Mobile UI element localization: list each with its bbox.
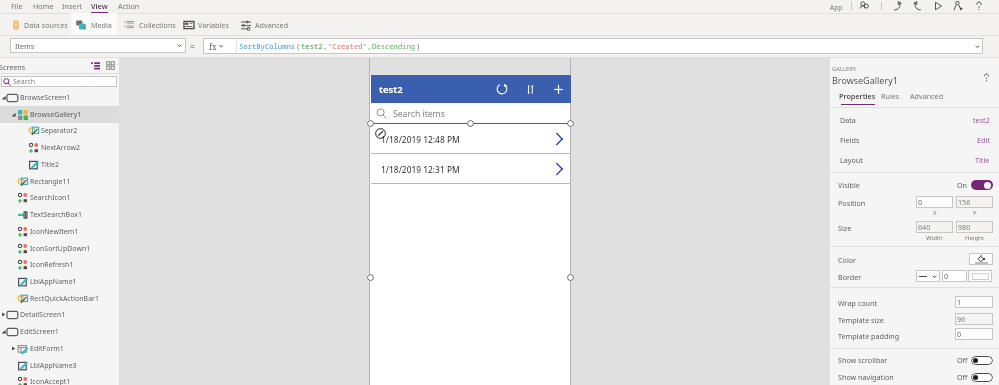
button[interactable]: IconSortUpDown1: [0, 240, 119, 257]
staticText: Fields: [840, 135, 860, 145]
button[interactable]: New item: [547, 75, 569, 103]
button[interactable]: Items: [10, 38, 186, 53]
button[interactable]: SearchIcon1: [0, 189, 119, 206]
button[interactable]: 0: [955, 328, 993, 340]
button[interactable]: RectQuickActionBar1: [0, 290, 119, 307]
staticText: 96: [957, 314, 966, 324]
button[interactable]: Insert: [58, 0, 86, 13]
button[interactable]: Properties: [837, 88, 878, 105]
button[interactable]: Search items: [371, 103, 571, 124]
staticText: Rules: [881, 91, 900, 101]
staticText: IconSortUpDown1: [30, 244, 91, 254]
button[interactable]: Border style: [916, 270, 940, 282]
button[interactable]: Rectangle11: [0, 173, 119, 190]
button[interactable]: BrowseGallery1: [0, 106, 119, 123]
staticText: test2: [379, 83, 403, 96]
button[interactable]: NextArrow2: [0, 139, 119, 156]
staticText: NextArrow2: [41, 143, 81, 153]
button[interactable]: Tree view: [91, 61, 100, 70]
button[interactable]: Rules: [879, 88, 902, 101]
button[interactable]: TextSearchBox1: [0, 206, 119, 223]
button[interactable]: LblAppName1: [0, 273, 119, 290]
button[interactable]: File: [7, 0, 27, 13]
button[interactable]: Media: [70, 14, 118, 35]
staticText: Insert: [62, 1, 82, 11]
button[interactable]: 640: [916, 221, 953, 233]
button[interactable]: Undo: [891, 0, 903, 12]
button[interactable]: Data sources: [5, 14, 74, 35]
button[interactable]: IconRefresh1: [0, 256, 119, 273]
staticText: fx: [209, 41, 217, 52]
staticText: 0: [944, 271, 949, 281]
button[interactable]: Preview: [932, 0, 944, 12]
button[interactable]: EditScreen1: [0, 323, 119, 340]
staticText: Advanced: [910, 91, 944, 101]
staticText: LblAppName1: [30, 277, 77, 287]
button[interactable]: BrowseScreen1: [0, 89, 119, 106]
staticText: Action: [118, 1, 140, 11]
staticText: Show navigation: [838, 372, 894, 382]
staticText: EditScreen1: [20, 327, 59, 337]
button[interactable]: Function: [203, 38, 236, 54]
button[interactable]: 96: [955, 313, 993, 325]
staticText: BrowseScreen1: [20, 93, 71, 103]
staticText: Home: [33, 1, 54, 11]
button[interactable]: 156: [956, 196, 993, 208]
button[interactable]: Help: [973, 0, 985, 12]
button[interactable]: Fields: [830, 130, 999, 149]
button[interactable]: DetailScreen1: [0, 306, 119, 323]
staticText: 980: [958, 222, 971, 232]
button[interactable]: Share: [952, 0, 964, 12]
button[interactable]: Search: [1, 76, 117, 87]
staticText: Layout: [840, 155, 863, 165]
button[interactable]: IconAccept1: [0, 373, 119, 385]
button[interactable]: Variables: [178, 14, 235, 35]
button[interactable]: Visible: [830, 178, 999, 192]
staticText: Screens: [0, 62, 26, 72]
staticText: Collections: [139, 20, 176, 30]
staticText: Wrap count: [838, 298, 878, 308]
staticText: RectQuickActionBar1: [30, 294, 99, 304]
staticText: Title: [975, 155, 990, 165]
staticText: (: [296, 41, 301, 51]
button[interactable]: 0: [942, 270, 967, 282]
button[interactable]: App: [830, 3, 843, 12]
staticText: test2: [301, 41, 323, 51]
button[interactable]: Redo: [912, 0, 924, 12]
button[interactable]: Collections: [118, 14, 182, 35]
staticText: Off: [957, 372, 968, 382]
button[interactable]: 1/18/2019 12:31 PM: [371, 154, 571, 184]
button[interactable]: Layout: [830, 150, 999, 169]
button[interactable]: 1: [955, 296, 993, 308]
button[interactable]: IconNewItem1: [0, 223, 119, 240]
staticText: TextSearchBox1: [30, 210, 82, 220]
button[interactable]: 980: [956, 221, 993, 233]
button[interactable]: Help: [982, 73, 991, 82]
button[interactable]: 1/18/2019 12:48 PM: [371, 124, 571, 154]
button[interactable]: Refresh: [491, 75, 513, 103]
button[interactable]: Advanced: [235, 14, 295, 35]
button[interactable]: Data: [830, 110, 999, 129]
button[interactable]: Account: [858, 0, 870, 12]
staticText: LblAppName3: [30, 361, 77, 371]
staticText: Items: [15, 41, 35, 51]
button[interactable]: LblAppName3: [0, 357, 119, 374]
button[interactable]: Action: [114, 0, 144, 13]
button[interactable]: Separator2: [0, 122, 119, 139]
staticText: Separator2: [41, 126, 78, 136]
staticText: 1/18/2019 12:48 PM: [381, 134, 460, 145]
button[interactable]: Border colour: [968, 270, 992, 282]
button[interactable]: EditForm1: [0, 340, 119, 357]
button[interactable]: Sort: [519, 75, 541, 103]
button[interactable]: 0: [916, 196, 953, 208]
button[interactable]: Thumbnail view: [106, 61, 115, 70]
button[interactable]: Show navigation: [830, 370, 999, 384]
button[interactable]: Fill colour: [969, 253, 993, 265]
button[interactable]: Show scrollbar: [830, 353, 999, 367]
staticText: On: [957, 180, 968, 190]
button[interactable]: View: [87, 0, 112, 13]
button[interactable]: Title2: [0, 156, 119, 173]
button[interactable]: Advanced: [908, 88, 946, 101]
button[interactable]: Home: [29, 0, 58, 13]
staticText: Height: [965, 234, 984, 242]
